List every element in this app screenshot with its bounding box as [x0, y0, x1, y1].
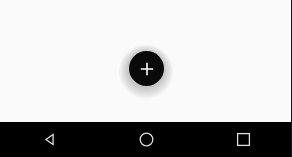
button[interactable]: Home: [98, 122, 195, 157]
button[interactable]: Add: [129, 51, 164, 86]
button[interactable]: Recent apps: [195, 122, 292, 157]
button[interactable]: Back: [0, 122, 98, 157]
